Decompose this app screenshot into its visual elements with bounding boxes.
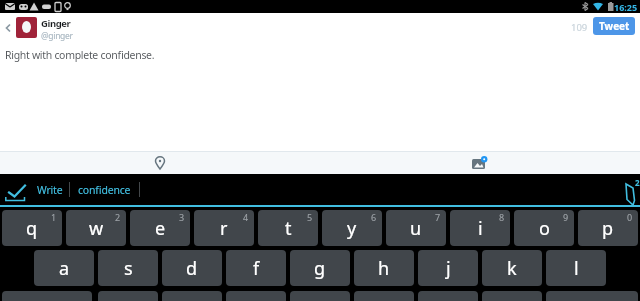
button[interactable]: r (194, 210, 254, 246)
staticText: confidence (78, 183, 131, 197)
button[interactable]: d (162, 250, 222, 286)
button[interactable] (16, 17, 37, 38)
staticText: q (26, 216, 38, 241)
staticText: Ginger (41, 17, 71, 30)
button[interactable]: p (578, 210, 638, 246)
staticText: o (539, 216, 550, 241)
staticText: p (602, 216, 614, 241)
staticText: j (446, 256, 451, 281)
button[interactable] (482, 291, 542, 301)
button[interactable]: confidence (70, 174, 139, 205)
staticText: l (574, 256, 579, 281)
staticText: u (410, 216, 422, 241)
button[interactable]: k (482, 250, 542, 286)
button[interactable]: f (226, 250, 286, 286)
staticText: Write (37, 183, 63, 197)
staticText: w (89, 216, 104, 241)
button[interactable] (320, 152, 640, 174)
button[interactable]: i (450, 210, 510, 246)
staticText: e (155, 216, 166, 241)
button[interactable]: w (66, 210, 126, 246)
staticText: 6 (371, 211, 377, 223)
button[interactable] (0, 174, 32, 205)
button[interactable] (418, 291, 478, 301)
button[interactable]: h (354, 250, 414, 286)
staticText: 9 (563, 211, 569, 223)
button[interactable]: g (290, 250, 350, 286)
staticText: 2 (635, 177, 640, 188)
button[interactable] (290, 291, 350, 301)
button[interactable] (98, 291, 158, 301)
staticText: 16:25 (614, 1, 638, 13)
staticText: f (253, 256, 260, 281)
staticText: 1 (51, 211, 57, 223)
button[interactable]: o (514, 210, 574, 246)
staticText: Right with complete confidense. (5, 48, 155, 62)
staticText: 4 (243, 211, 249, 223)
button[interactable]: u (386, 210, 446, 246)
staticText: g (314, 256, 326, 281)
button[interactable]: t (258, 210, 318, 246)
button[interactable] (2, 291, 92, 301)
staticText: t (285, 216, 292, 241)
staticText: y (347, 216, 357, 241)
staticText: i (478, 216, 483, 241)
staticText: k (507, 256, 517, 281)
staticText: 5 (307, 211, 313, 223)
staticText: h (378, 256, 390, 281)
staticText: r (220, 216, 228, 241)
staticText: Tweet (599, 19, 630, 33)
staticText: 109 (571, 21, 588, 34)
staticText: 7 (435, 211, 441, 223)
button[interactable]: a (34, 250, 94, 286)
button[interactable]: Write (32, 174, 69, 205)
button[interactable] (354, 291, 414, 301)
button[interactable] (546, 291, 638, 301)
button[interactable] (226, 291, 286, 301)
staticText: 8 (499, 211, 505, 223)
staticText: @ginger (41, 30, 73, 42)
staticText: s (124, 256, 133, 281)
button[interactable]: q (2, 210, 62, 246)
staticText: 2 (115, 211, 121, 223)
button[interactable] (162, 291, 222, 301)
button[interactable] (0, 152, 320, 174)
staticText: 0 (627, 211, 633, 223)
button[interactable]: j (418, 250, 478, 286)
button[interactable]: s (98, 250, 158, 286)
button[interactable]: l (546, 250, 606, 286)
staticText: 3 (179, 211, 185, 223)
staticText: a (59, 256, 70, 281)
button[interactable]: e (130, 210, 190, 246)
button[interactable]: y (322, 210, 382, 246)
button[interactable]: Tweet (593, 17, 635, 35)
staticText: d (186, 256, 198, 281)
button[interactable]: 2 (614, 174, 640, 205)
